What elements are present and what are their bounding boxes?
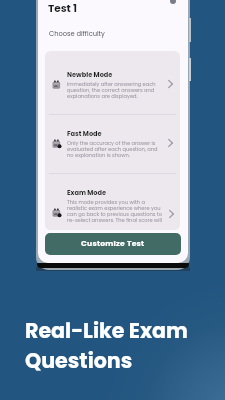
staticText: Immediately after answering each questio… bbox=[67, 81, 161, 100]
staticText: This mode provides you with a realistic … bbox=[67, 199, 165, 224]
staticText: Only the accuracy of the answer is evalu… bbox=[67, 140, 161, 159]
staticText: Real-Like Exam Questions bbox=[25, 316, 188, 376]
button[interactable]: Fast Mode bbox=[45, 115, 180, 173]
staticText: Newbie Mode bbox=[67, 70, 113, 79]
other: Open bbox=[164, 78, 176, 90]
staticText: Exam Mode bbox=[67, 188, 107, 197]
other: Open bbox=[164, 137, 176, 149]
button[interactable]: Customize Test bbox=[45, 233, 181, 255]
staticText: Test 1 bbox=[48, 1, 77, 16]
staticText: Customize Test bbox=[81, 238, 145, 249]
button[interactable]: Newbie Mode bbox=[45, 56, 180, 114]
button[interactable]: Exam Mode bbox=[45, 174, 180, 230]
staticText: Fast Mode bbox=[67, 129, 102, 138]
staticText: Choose difficulty bbox=[49, 29, 105, 38]
other: Open bbox=[166, 208, 176, 220]
